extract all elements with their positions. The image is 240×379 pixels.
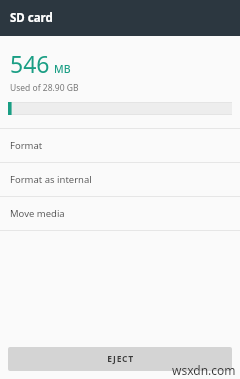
staticText: MB	[54, 62, 71, 76]
button[interactable]: Format as internal	[0, 163, 240, 196]
button[interactable]: EJECT	[8, 347, 232, 371]
staticText: Move media	[10, 207, 65, 220]
button[interactable]: Move media	[0, 197, 240, 230]
staticText: 546	[10, 48, 50, 79]
staticText: Used of 28.90 GB	[10, 82, 79, 94]
button[interactable]: Format	[0, 129, 240, 162]
staticText: SD card	[10, 10, 53, 26]
staticText: Format	[10, 139, 43, 152]
staticText: EJECT	[107, 353, 134, 365]
staticText: wsxdn.com	[172, 362, 236, 378]
staticText: Format as internal	[10, 173, 92, 186]
